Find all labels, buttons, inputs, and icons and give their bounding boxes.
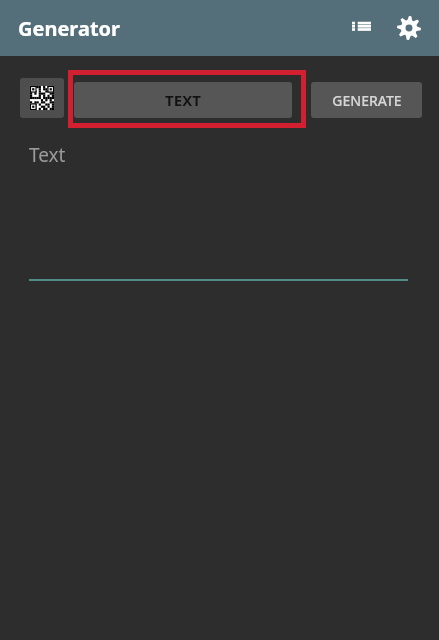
button[interactable]: History <box>337 4 385 52</box>
staticText: GENERATE <box>332 91 402 110</box>
staticText: TEXT <box>165 90 201 110</box>
button[interactable]: GENERATE <box>311 82 422 118</box>
button[interactable]: TEXT <box>74 82 292 118</box>
staticText: Text <box>29 142 66 168</box>
button[interactable]: Settings <box>385 4 433 52</box>
button[interactable]: Text <box>0 128 439 282</box>
staticText: Generator <box>18 15 120 42</box>
button[interactable]: Scan QR code <box>20 78 64 118</box>
